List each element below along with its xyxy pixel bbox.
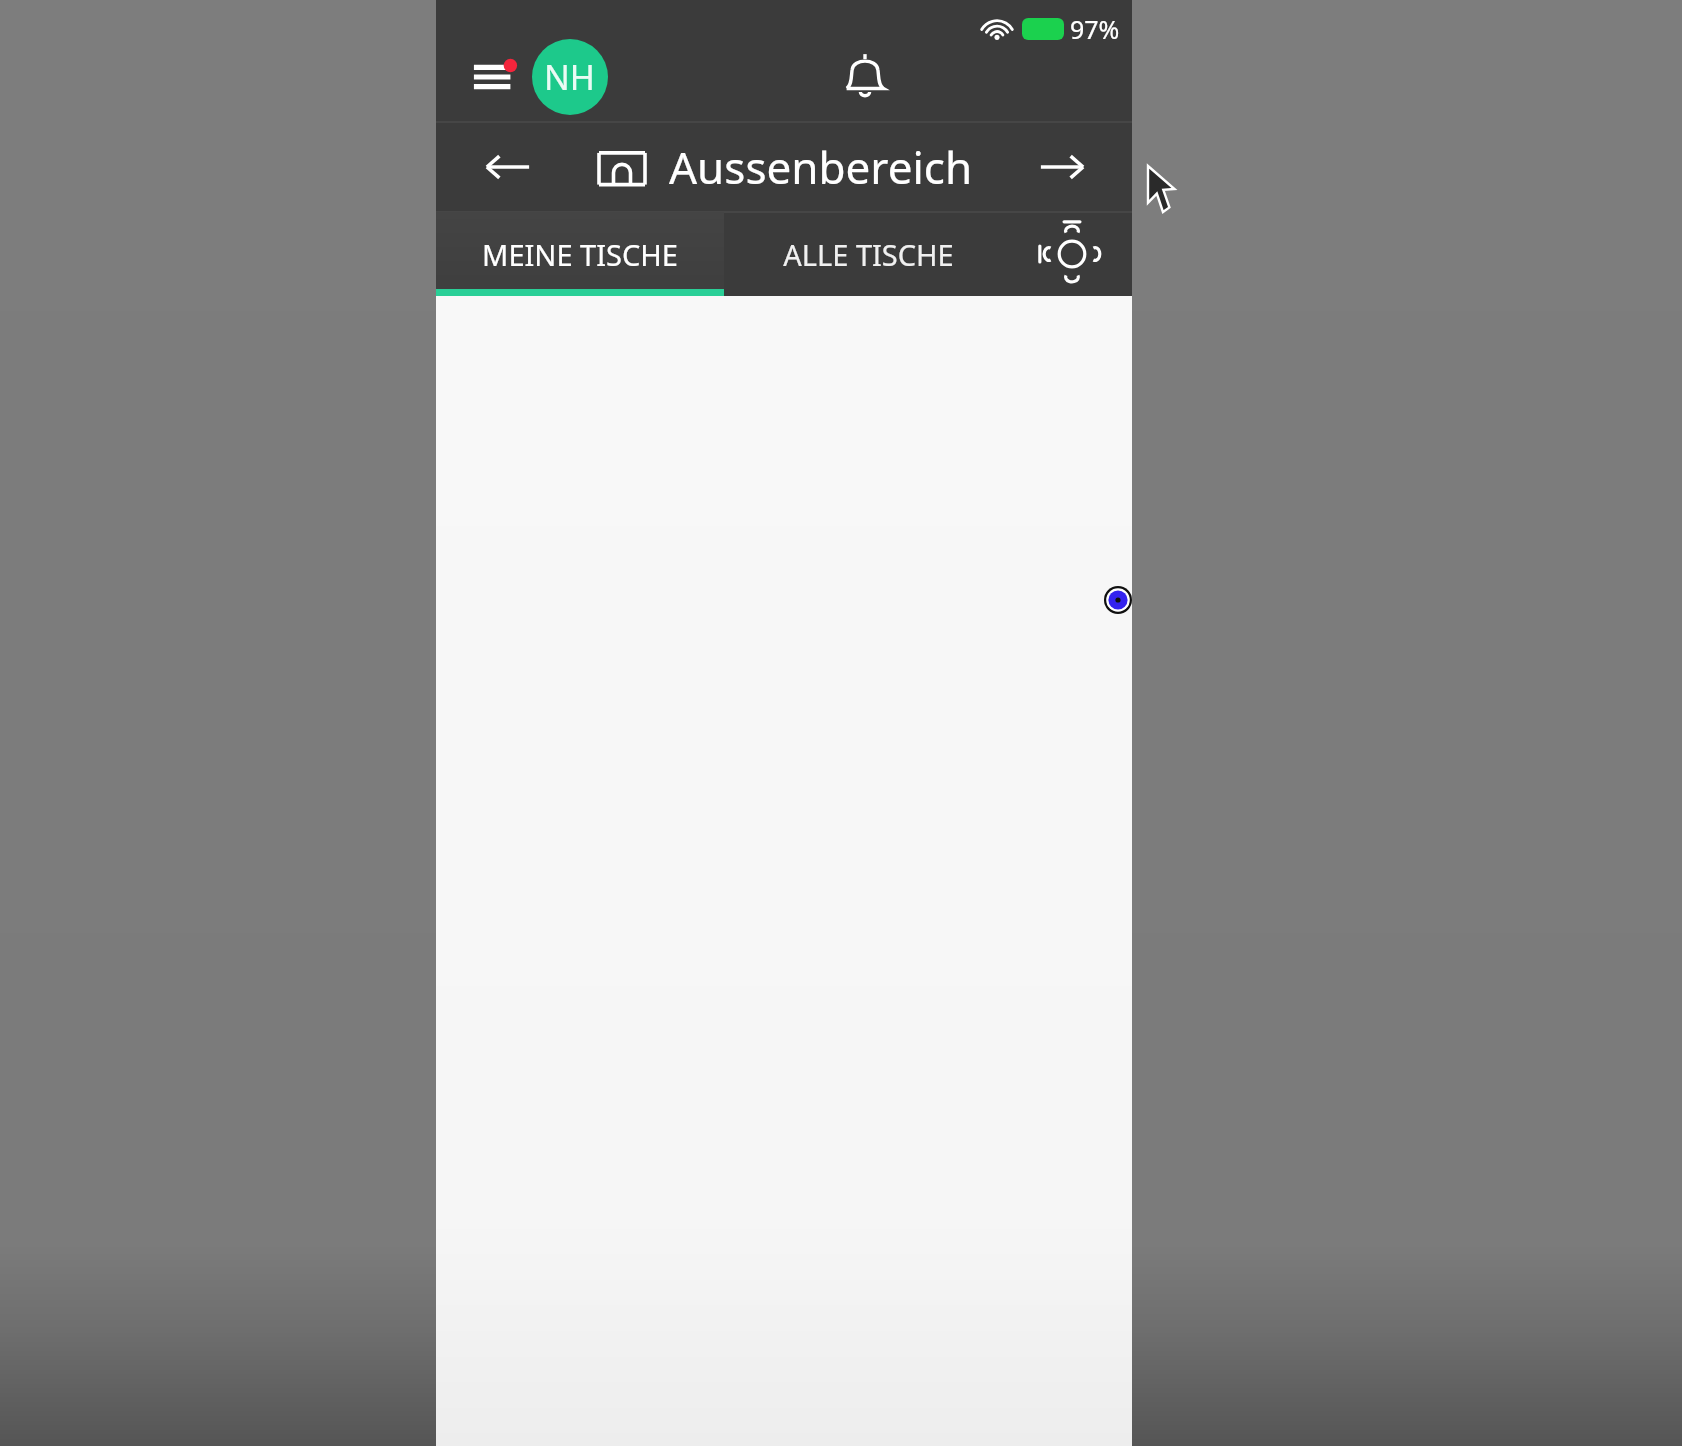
staticText: Aussenbereich bbox=[669, 137, 973, 197]
button[interactable]: Next area bbox=[1032, 137, 1092, 197]
staticText: 97% bbox=[1070, 12, 1120, 46]
button[interactable]: MEINE TISCHE bbox=[436, 212, 724, 296]
button[interactable]: Profile NH bbox=[532, 39, 608, 115]
button[interactable]: Menu bbox=[468, 49, 524, 105]
staticText: NH bbox=[544, 54, 596, 100]
button[interactable]: Notifications bbox=[827, 39, 903, 115]
button[interactable]: Table layout bbox=[1012, 212, 1132, 296]
button[interactable]: Previous area bbox=[478, 137, 538, 197]
button[interactable]: ALLE TISCHE bbox=[724, 212, 1012, 296]
staticText: ALLE TISCHE bbox=[783, 235, 954, 274]
staticText: MEINE TISCHE bbox=[482, 235, 678, 274]
